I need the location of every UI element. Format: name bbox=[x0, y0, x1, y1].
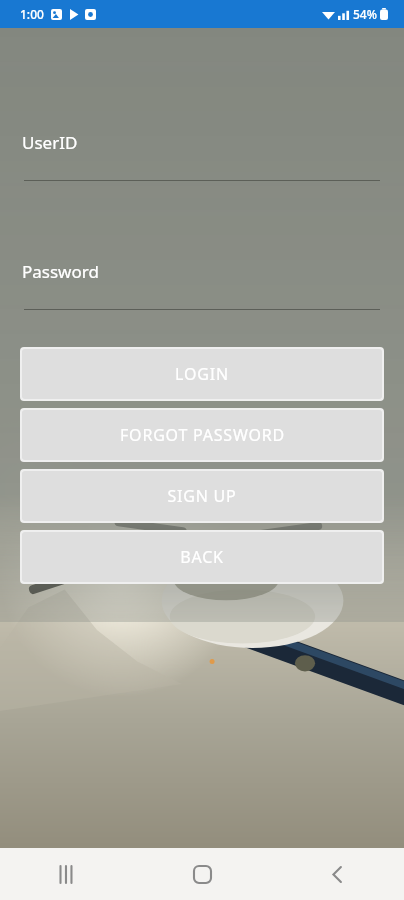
button[interactable]: Home bbox=[173, 848, 231, 900]
staticText: BACK bbox=[180, 546, 224, 568]
staticText: SIGN UP bbox=[167, 485, 237, 507]
staticText: FORGOT PASSWORD bbox=[120, 424, 285, 446]
button[interactable]: LOGIN bbox=[22, 349, 382, 399]
staticText: LOGIN bbox=[175, 363, 229, 385]
button[interactable]: SIGN UP bbox=[22, 471, 382, 521]
staticText: 1:00 bbox=[20, 6, 44, 22]
button[interactable]: Recent apps bbox=[38, 848, 96, 900]
button[interactable]: Back bbox=[308, 848, 366, 900]
staticText: 54% bbox=[353, 6, 377, 22]
staticText: UserID bbox=[22, 131, 78, 154]
button[interactable]: BACK bbox=[22, 532, 382, 582]
staticText: Password bbox=[22, 260, 99, 283]
button[interactable]: FORGOT PASSWORD bbox=[22, 410, 382, 460]
